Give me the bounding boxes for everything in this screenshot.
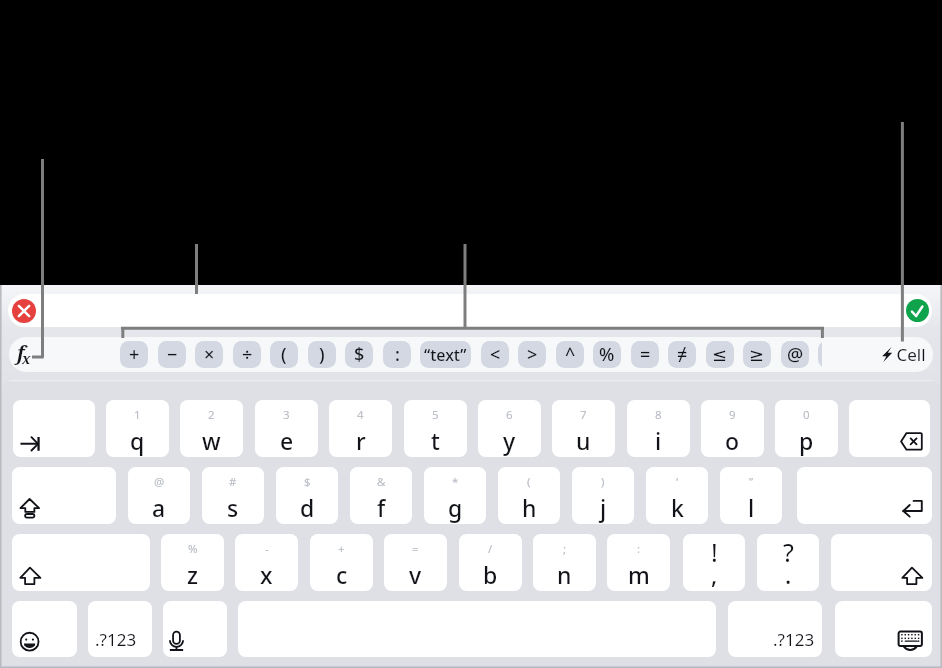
button[interactable]: e — [255, 400, 318, 457]
button[interactable]: Backspace — [849, 400, 930, 457]
button[interactable]: ) — [308, 341, 336, 368]
button[interactable]: m — [607, 534, 670, 591]
button[interactable]: j — [572, 467, 634, 524]
button[interactable]: ≠ — [668, 341, 696, 368]
staticText: % — [599, 342, 615, 367]
button[interactable]: − — [158, 341, 186, 368]
button[interactable]: u — [552, 400, 615, 457]
button[interactable]: , — [683, 534, 745, 591]
button[interactable]: : — [383, 341, 411, 368]
button[interactable]: % — [593, 341, 621, 368]
button[interactable]: > — [518, 341, 546, 368]
button[interactable]: .?123 — [88, 601, 152, 657]
staticText: x — [22, 349, 31, 368]
staticText: o — [725, 425, 740, 456]
button[interactable]: ÷ — [233, 341, 261, 368]
staticText: ≤ — [712, 344, 728, 365]
button[interactable]: v — [384, 534, 447, 591]
staticText: # — [229, 474, 237, 490]
button[interactable]: ≤ — [706, 341, 734, 368]
staticText: $ — [304, 474, 311, 490]
staticText: ( — [527, 474, 531, 490]
button[interactable]: & — [818, 341, 822, 368]
button[interactable]: ≥ — [743, 341, 771, 368]
button[interactable]: × — [195, 341, 223, 368]
staticText: .?123 — [773, 628, 815, 651]
button[interactable]: . — [757, 534, 819, 591]
button[interactable]: Shift — [831, 534, 932, 591]
staticText: d — [300, 492, 315, 523]
button[interactable]: .?123 — [728, 601, 822, 657]
staticText: ) — [319, 342, 325, 367]
button[interactable]: Functions — [9, 338, 43, 372]
button[interactable]: s — [202, 467, 264, 524]
staticText: 0 — [803, 407, 810, 423]
button[interactable]: d — [276, 467, 338, 524]
button[interactable]: f — [350, 467, 412, 524]
button[interactable]: @ — [781, 341, 809, 368]
staticText: × — [204, 342, 215, 367]
button[interactable]: h — [498, 467, 560, 524]
staticText: + — [338, 541, 345, 557]
button[interactable]: ( — [270, 341, 298, 368]
button[interactable]: = — [631, 341, 659, 368]
staticText: y — [503, 425, 516, 456]
staticText: n — [557, 559, 572, 590]
staticText: : — [637, 541, 641, 557]
button[interactable]: Caps lock — [12, 467, 116, 524]
button[interactable]: Shift — [12, 534, 150, 591]
button[interactable]: o — [701, 400, 764, 457]
button[interactable]: z — [161, 534, 224, 591]
staticText: 7 — [580, 407, 587, 423]
staticText: 1 — [134, 407, 141, 423]
staticText: * — [452, 474, 459, 490]
button[interactable]: r — [329, 400, 392, 457]
button[interactable]: a — [128, 467, 190, 524]
staticText: v — [409, 559, 422, 590]
staticText: b — [483, 559, 498, 590]
staticText: - — [265, 541, 269, 557]
button[interactable]: x — [235, 534, 298, 591]
staticText: g — [448, 492, 463, 523]
button[interactable]: c — [310, 534, 373, 591]
staticText: Cell — [892, 343, 926, 366]
staticText: l — [748, 492, 755, 523]
button[interactable]: Dictate — [163, 601, 227, 657]
staticText: $ — [354, 342, 365, 367]
staticText: z — [187, 559, 198, 590]
button[interactable]: i — [627, 400, 690, 457]
button[interactable]: w — [180, 400, 243, 457]
button[interactable]: Emoji — [12, 601, 77, 657]
button[interactable]: k — [646, 467, 708, 524]
staticText: < — [490, 342, 501, 367]
button[interactable]: < — [481, 341, 509, 368]
button[interactable]: g — [424, 467, 486, 524]
staticText: ” — [749, 474, 754, 490]
button[interactable]: b — [459, 534, 522, 591]
button[interactable]: Accept — [906, 299, 929, 322]
button[interactable]: + — [120, 341, 148, 368]
staticText: ≥ — [749, 344, 765, 365]
button[interactable]: Cancel — [12, 299, 36, 323]
button[interactable]: n — [533, 534, 596, 591]
staticText: f — [17, 340, 25, 366]
button[interactable]: ^ — [556, 341, 584, 368]
button[interactable]: y — [478, 400, 541, 457]
button[interactable]: l — [720, 467, 782, 524]
staticText: 8 — [655, 407, 662, 423]
button[interactable]: q — [106, 400, 169, 457]
button[interactable]: Tab — [13, 400, 95, 457]
button[interactable]: Return — [797, 467, 932, 524]
staticText: s — [227, 492, 239, 523]
button[interactable]: Hide keyboard — [835, 601, 932, 657]
button[interactable]: $ — [345, 341, 373, 368]
button[interactable]: “text” — [420, 341, 471, 368]
button[interactable]: p — [775, 400, 838, 457]
staticText: t — [431, 425, 440, 456]
staticText: ? — [783, 535, 794, 569]
staticText: ! — [711, 535, 718, 569]
button[interactable]: t — [404, 400, 467, 457]
button[interactable]: Cell — [882, 343, 926, 366]
staticText: @ — [154, 474, 165, 490]
